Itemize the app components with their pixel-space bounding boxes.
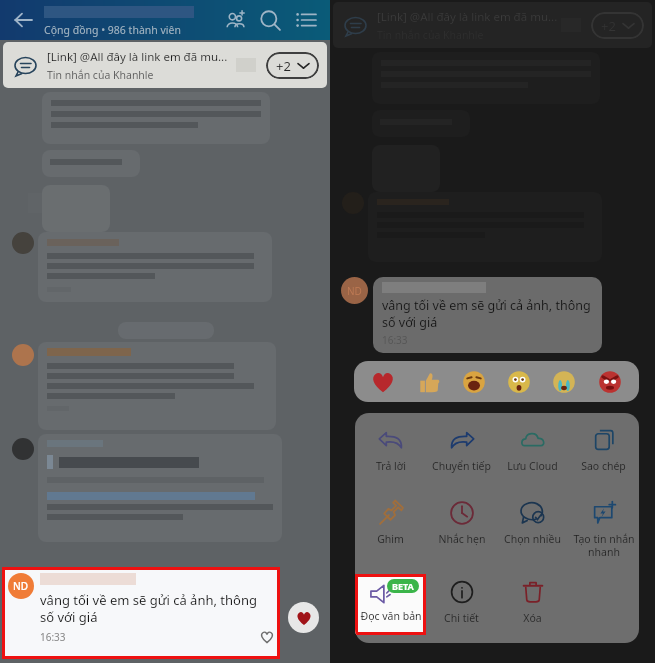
- staticText: +2: [601, 17, 616, 35]
- staticText: Lưu Cloud: [507, 459, 558, 473]
- staticText: 16:33: [40, 630, 66, 644]
- button[interactable]: Chi tiết: [426, 574, 497, 643]
- staticText: Chi tiết: [444, 611, 479, 625]
- staticText: Chuyển tiếp: [432, 459, 491, 473]
- button[interactable]: Nhắc hẹn: [426, 495, 497, 574]
- button[interactable]: Lưu Cloud: [497, 422, 568, 495]
- button[interactable]: Like: [413, 366, 445, 398]
- button[interactable]: Menu: [288, 2, 324, 38]
- button[interactable]: +2: [276, 52, 309, 79]
- staticText: +2: [276, 57, 291, 75]
- staticText: BETA: [392, 580, 414, 592]
- staticText: ND: [347, 284, 362, 298]
- staticText: Tạo tin nhắn nhanh: [573, 532, 635, 559]
- staticText: Cộng đồng • 986 thành viên: [44, 23, 181, 37]
- button[interactable]: Wow: [503, 366, 535, 398]
- button[interactable]: Add member: [216, 2, 252, 38]
- button[interactable]: Chọn nhiều: [497, 495, 568, 574]
- button[interactable]: Haha: [458, 366, 490, 398]
- staticText: ND: [13, 579, 29, 593]
- staticText: vâng tối về em sẽ gửi cả ảnh, thông số v…: [40, 591, 274, 626]
- button[interactable]: Back: [8, 5, 38, 35]
- staticText: Sao chép: [581, 459, 626, 473]
- button[interactable]: Xóa: [497, 574, 568, 643]
- staticText: Ghim: [377, 532, 404, 546]
- staticText: Xóa: [523, 611, 542, 625]
- staticText: Chọn nhiều: [504, 532, 561, 546]
- button[interactable]: Heart: [367, 366, 399, 398]
- staticText: Đọc văn bản: [360, 609, 422, 623]
- button[interactable]: Angry: [594, 366, 626, 398]
- staticText: Nhắc hẹn: [438, 532, 486, 546]
- staticText: vâng tối về em sẽ gửi cả ảnh, thông số v…: [382, 297, 597, 331]
- button[interactable]: Heart reaction: [288, 602, 319, 633]
- staticText: Trả lời: [376, 459, 406, 473]
- staticText: Tin nhắn của Khanhle: [47, 68, 154, 82]
- button[interactable]: BETA: [355, 574, 426, 635]
- button[interactable]: Sad: [548, 366, 580, 398]
- staticText: 16:33: [382, 333, 408, 347]
- staticText: [Link] @All đây là link em đã mu...: [47, 49, 228, 65]
- button[interactable]: Search: [252, 2, 288, 38]
- button[interactable]: Sao chép: [568, 422, 639, 495]
- staticText: [Link] @All đây là link em đã mu...: [377, 9, 558, 25]
- button[interactable]: Trả lời: [355, 422, 426, 495]
- button[interactable]: Tạo tin nhắn nhanh: [568, 495, 639, 574]
- button[interactable]: [Link] @All đây là link em đã mu...: [3, 42, 327, 88]
- button[interactable]: Chuyển tiếp: [426, 422, 497, 495]
- button[interactable]: Ghim: [355, 495, 426, 574]
